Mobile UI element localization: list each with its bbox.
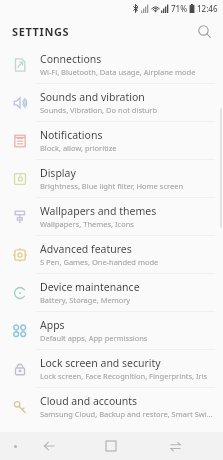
button[interactable]: Apps <box>0 312 223 349</box>
staticText: Lock screen, Face Recognition, Fingerpri… <box>40 371 208 381</box>
button[interactable]: Sounds and vibration <box>0 84 223 121</box>
button[interactable]: Connections <box>0 46 223 83</box>
staticText: Device maintenance <box>40 280 140 294</box>
button[interactable]: Search <box>191 18 217 44</box>
button[interactable]: Notifications <box>0 122 223 159</box>
staticText: Sounds, Vibration, Do not disturb <box>40 105 158 115</box>
staticText: Block, allow, prioritize <box>40 143 117 153</box>
staticText: Sounds and vibration <box>40 90 145 104</box>
button[interactable]: Home <box>99 434 123 458</box>
button[interactable]: Indicator <box>8 439 22 453</box>
button[interactable]: Device maintenance <box>0 274 223 311</box>
staticText: Connections <box>40 52 102 66</box>
staticText: SETTINGS <box>12 24 70 39</box>
staticText: Notifications <box>40 128 103 142</box>
staticText: Battery, Storage, Memory <box>40 295 131 305</box>
button[interactable]: Cloud and accounts <box>0 388 223 425</box>
button[interactable]: Recents <box>163 434 187 458</box>
staticText: Wallpapers and themes <box>40 204 157 218</box>
staticText: 71% <box>171 3 187 14</box>
staticText: 12:46 <box>197 3 218 14</box>
button[interactable]: Wallpapers and themes <box>0 198 223 235</box>
staticText: Cloud and accounts <box>40 394 138 408</box>
button[interactable]: Lock screen and security <box>0 350 223 387</box>
staticText: Brightness, Blue light filter, Home scre… <box>40 181 184 191</box>
staticText: Wallpapers, Themes, Icons <box>40 219 134 229</box>
staticText: Wi-Fi, Bluetooth, Data usage, Airplane m… <box>40 67 196 77</box>
staticText: Advanced features <box>40 242 132 256</box>
staticText: Default apps, App permissions <box>40 333 148 343</box>
button[interactable]: Display <box>0 160 223 197</box>
button[interactable]: Back <box>37 434 61 458</box>
staticText: Lock screen and security <box>40 356 161 370</box>
button[interactable]: Advanced features <box>0 236 223 273</box>
staticText: Apps <box>40 318 65 332</box>
staticText: Display <box>40 166 76 180</box>
staticText: Samsung Cloud, Backup and restore, Smart… <box>40 409 213 419</box>
staticText: S Pen, Games, One-handed mode <box>40 257 159 267</box>
